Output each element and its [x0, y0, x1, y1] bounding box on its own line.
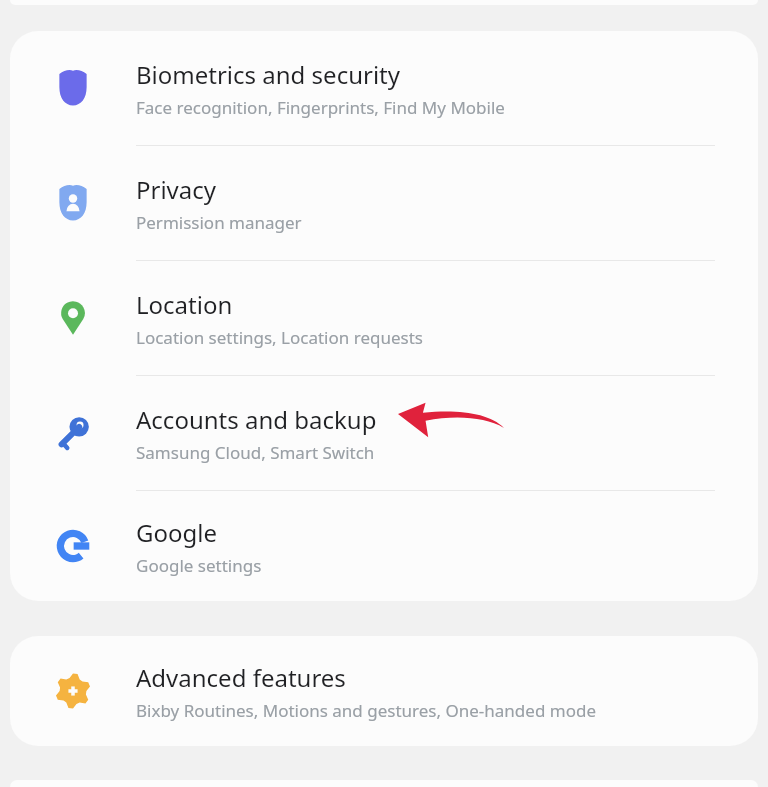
- staticText: Face recognition, Fingerprints, Find My …: [136, 96, 505, 119]
- staticText: Google settings: [136, 554, 262, 577]
- button[interactable]: Privacy: [10, 146, 758, 260]
- staticText: Samsung Cloud, Smart Switch: [136, 441, 375, 464]
- other: Annotation arrow pointing to Accounts an…: [398, 402, 504, 438]
- button[interactable]: Accounts and backup: [10, 376, 758, 490]
- staticText: Privacy: [136, 173, 217, 206]
- staticText: Google: [136, 516, 217, 549]
- staticText: Location: [136, 288, 233, 321]
- button[interactable]: Google: [10, 491, 758, 601]
- staticText: Biometrics and security: [136, 58, 400, 91]
- staticText: Location settings, Location requests: [136, 326, 423, 349]
- button[interactable]: Location: [10, 261, 758, 375]
- staticText: Bixby Routines, Motions and gestures, On…: [136, 699, 596, 722]
- button[interactable]: Biometrics and security: [10, 31, 758, 145]
- staticText: Permission manager: [136, 211, 302, 234]
- staticText: Advanced features: [136, 661, 346, 694]
- staticText: Accounts and backup: [136, 403, 377, 436]
- button[interactable]: Advanced features: [10, 636, 758, 746]
